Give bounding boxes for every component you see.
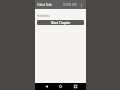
button[interactable]: Back xyxy=(43,83,50,90)
button[interactable]: Home xyxy=(57,83,64,90)
button[interactable]: More options xyxy=(78,2,84,8)
staticText: Harmless xyxy=(37,14,50,18)
staticText: SHOW DEV xyxy=(63,3,77,7)
button[interactable]: Recent apps xyxy=(72,83,79,90)
button[interactable]: Next Chapter xyxy=(37,20,84,25)
button[interactable]: SHOW DEV xyxy=(62,3,78,7)
staticText: Gilded Rolls xyxy=(37,3,52,7)
staticText: Next Chapter xyxy=(51,21,71,25)
